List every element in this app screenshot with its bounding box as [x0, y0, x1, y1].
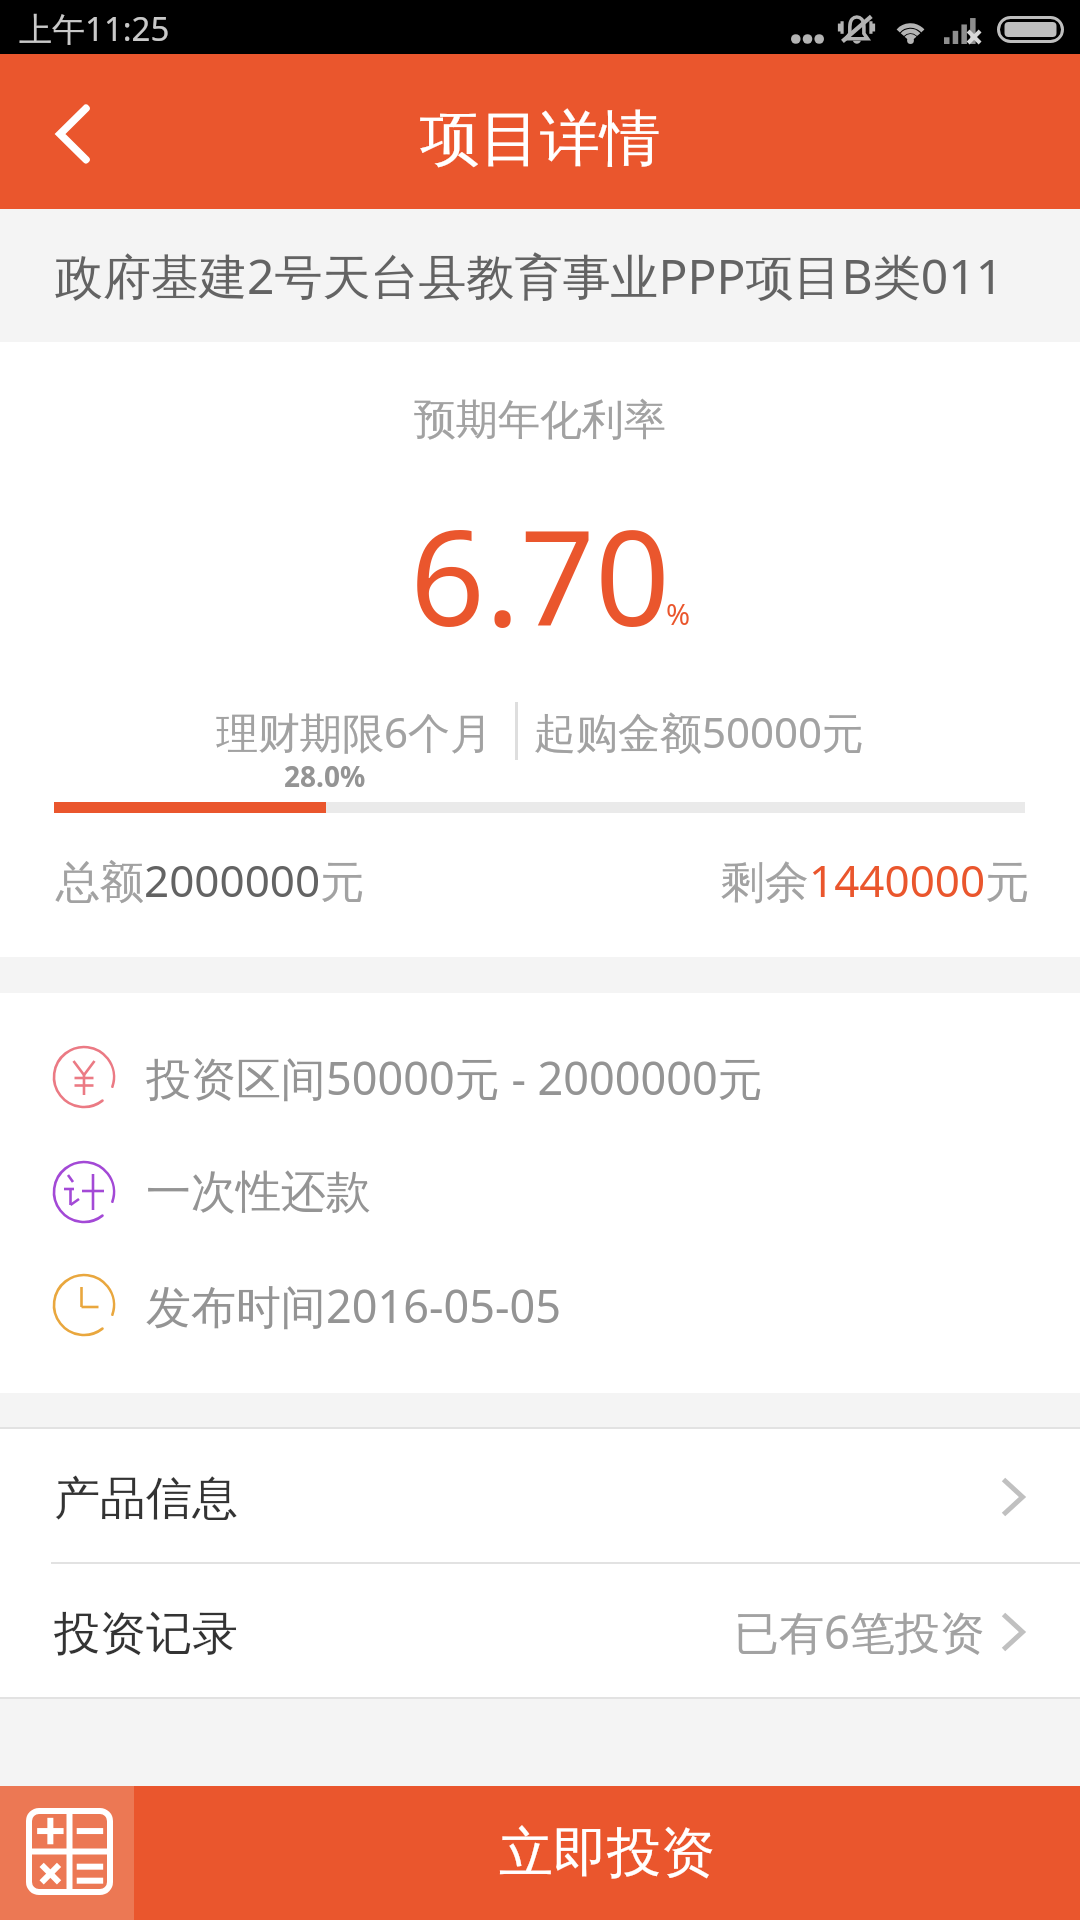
staticText: 产品信息: [54, 1470, 238, 1528]
staticText: 6.70: [410, 486, 670, 664]
staticText: 投资记录: [54, 1605, 238, 1663]
staticText: 剩余1440000元: [721, 850, 1030, 910]
staticText: 投资区间50000元 - 2000000元: [146, 1047, 763, 1108]
button[interactable]: 产品信息: [0, 1429, 1080, 1562]
staticText: 总额2000000元: [56, 850, 365, 910]
staticText: 已有6笔投资: [734, 1601, 985, 1662]
button[interactable]: Back: [0, 54, 142, 209]
staticText: 政府基建2号天台县教育事业PPP项目B类011: [55, 243, 1004, 309]
staticText: 28.0%: [284, 757, 366, 795]
staticText: 立即投资: [499, 1819, 715, 1887]
button[interactable]: 立即投资: [134, 1786, 1080, 1920]
staticText: 起购金额50000元: [534, 703, 865, 760]
staticText: 理财期限6个月: [216, 703, 493, 760]
staticText: 一次性还款: [146, 1164, 371, 1221]
staticText: 项目详情: [420, 101, 660, 177]
staticText: 发布时间2016-05-05: [146, 1275, 561, 1336]
staticText: 预期年化利率: [0, 394, 1080, 447]
staticText: 上午11:25: [19, 6, 170, 51]
button[interactable]: Calculator: [0, 1786, 134, 1920]
staticText: %: [666, 594, 691, 633]
button[interactable]: 投资记录: [0, 1564, 1080, 1697]
